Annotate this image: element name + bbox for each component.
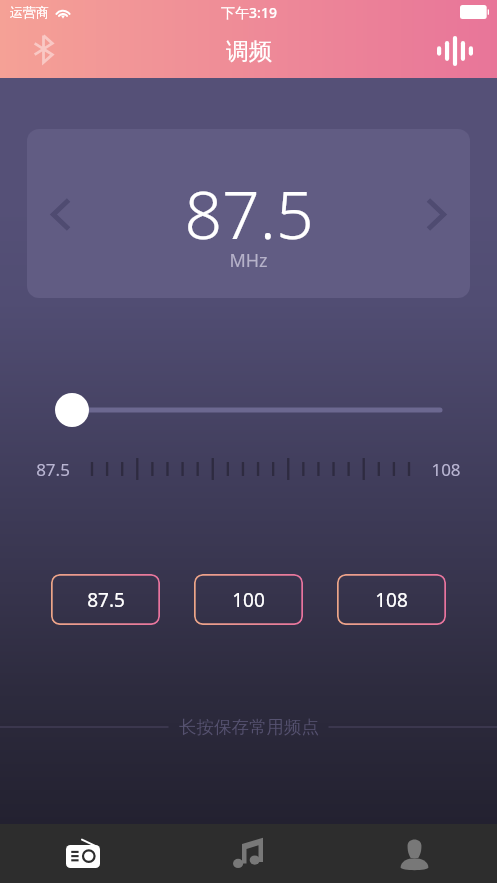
staticText: MHz bbox=[229, 248, 268, 273]
button[interactable]: Profile bbox=[331, 824, 497, 883]
button[interactable]: Music bbox=[165, 824, 331, 883]
staticText: 108 bbox=[431, 458, 461, 481]
button[interactable]: Previous station bbox=[39, 192, 83, 236]
button[interactable]: Frequency slider bbox=[55, 392, 440, 428]
button[interactable]: 108 bbox=[337, 574, 446, 625]
button[interactable]: Radio bbox=[0, 824, 165, 883]
staticText: 87.5 bbox=[87, 587, 125, 613]
staticText: 100 bbox=[232, 587, 265, 613]
staticText: 87.5 bbox=[184, 168, 314, 258]
button[interactable]: Equalizer bbox=[437, 36, 473, 66]
staticText: 长按保存常用频点 bbox=[179, 716, 319, 738]
staticText: 108 bbox=[375, 587, 408, 613]
button[interactable]: Bluetooth bbox=[30, 34, 56, 68]
button[interactable]: Next station bbox=[414, 192, 458, 236]
button[interactable]: 87.5 bbox=[51, 574, 160, 625]
staticText: 调频 bbox=[226, 37, 272, 66]
staticText: 下午3:19 bbox=[221, 3, 277, 22]
staticText: 运营商 bbox=[10, 4, 49, 20]
staticText: 87.5 bbox=[36, 458, 70, 481]
button[interactable]: 100 bbox=[194, 574, 303, 625]
